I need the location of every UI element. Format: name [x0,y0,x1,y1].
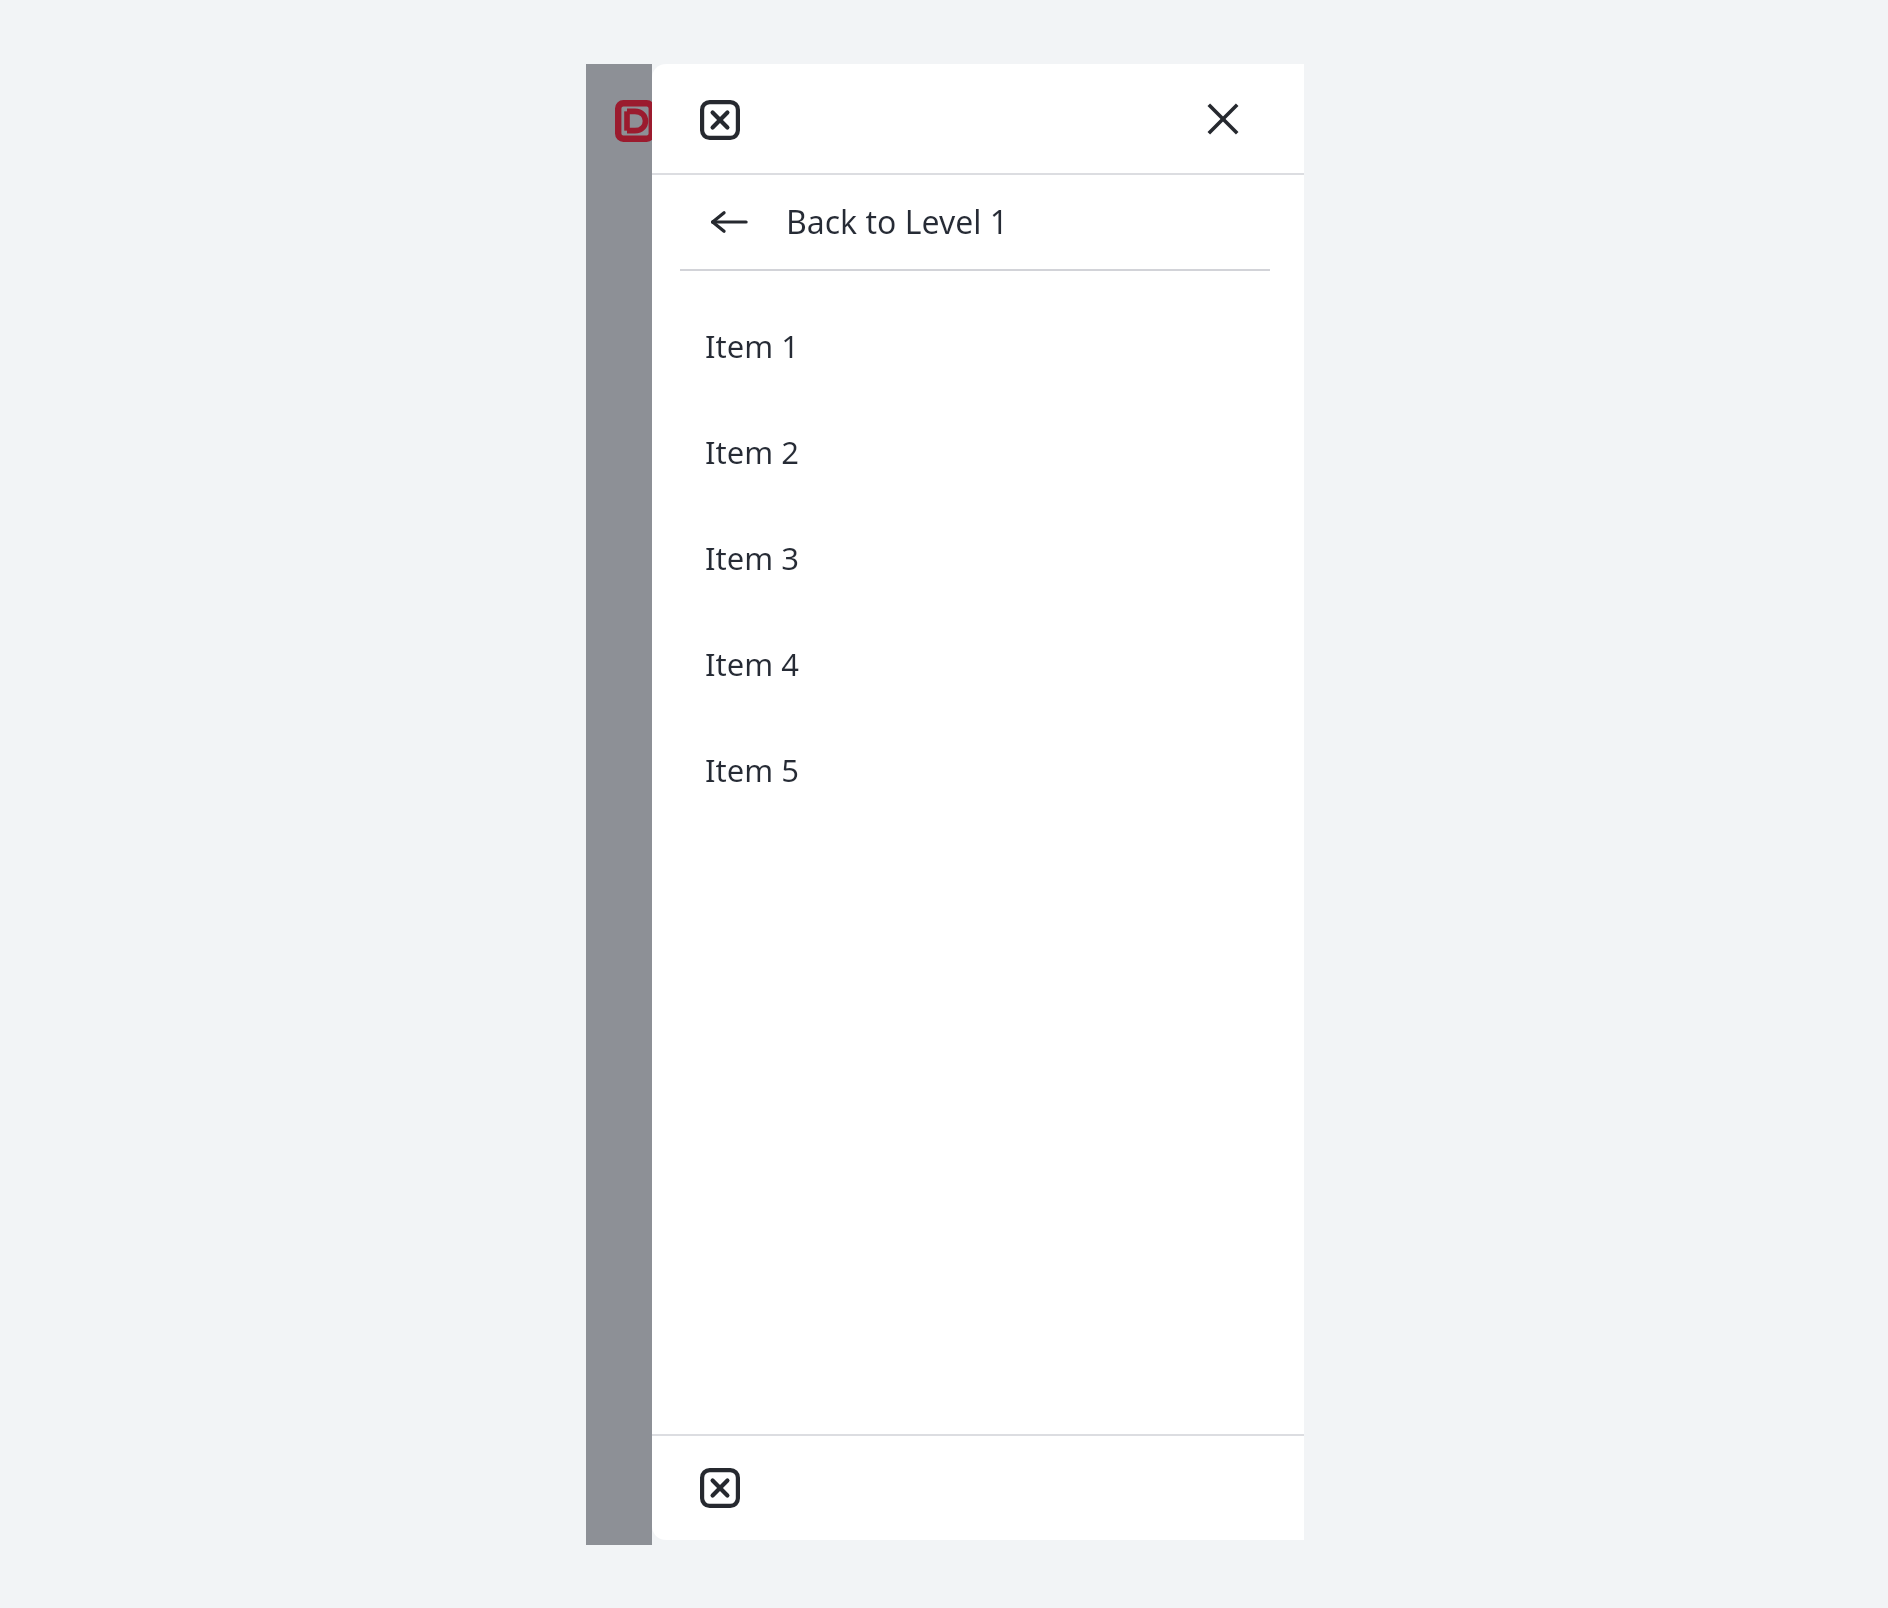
staticText: Item 5 [705,749,799,791]
staticText: Item 1 [705,325,799,367]
button[interactable]: Close [1204,100,1242,138]
button[interactable]: Item 2 [652,399,1304,505]
staticText: Item 4 [705,643,799,685]
staticText: Item 2 [705,431,799,473]
button[interactable]: Close dialog [700,1468,740,1508]
button[interactable]: Item 4 [652,611,1304,717]
staticText: Back to Level 1 [786,200,1009,244]
button[interactable]: Close dialog [700,100,740,140]
button[interactable]: Item 5 [652,717,1304,823]
button[interactable]: Item 1 [652,293,1304,399]
button[interactable]: Item 3 [652,505,1304,611]
staticText: Item 3 [705,537,799,579]
button[interactable]: Back to Level 1 [652,175,1304,269]
